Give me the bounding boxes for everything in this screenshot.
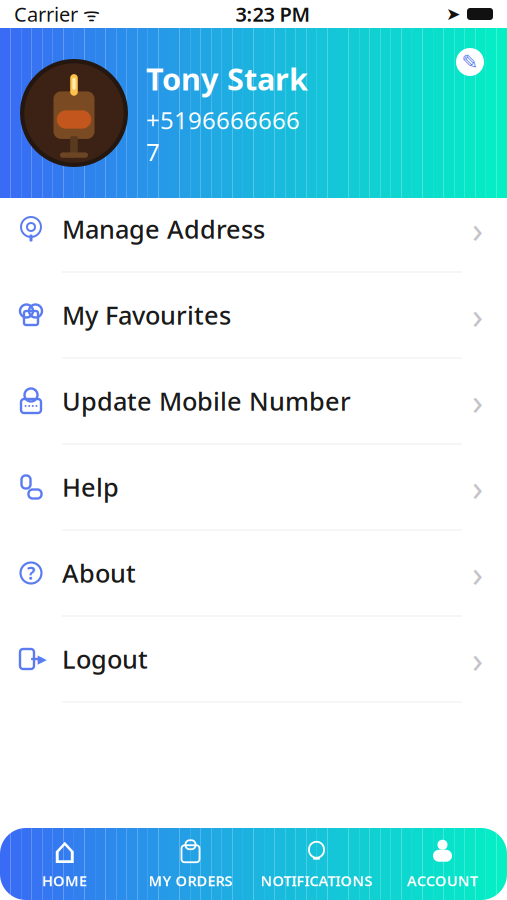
staticText: HOME (42, 871, 87, 890)
staticText: Carrier (14, 1, 78, 27)
staticText: ▶ (37, 652, 46, 666)
staticText: 3:23 PM (235, 1, 310, 27)
staticText: About (62, 556, 136, 590)
staticText: ᯤ (78, 2, 100, 26)
button[interactable]: Manage Address (0, 198, 507, 284)
staticText: NOTIFICATIONS (260, 871, 372, 890)
staticText: › (472, 377, 483, 425)
staticText: MY ORDERS (148, 871, 232, 890)
button[interactable]: ? (0, 542, 507, 628)
staticText: Manage Address (62, 212, 265, 246)
staticText: Update Mobile Number (62, 384, 351, 418)
staticText: Logout (62, 642, 148, 676)
staticText: ACCOUNT (407, 871, 478, 890)
staticText: ? (27, 561, 35, 584)
staticText: ✎ (461, 51, 478, 73)
staticText: ⌂ (53, 830, 76, 871)
staticText: Tony Stark (146, 58, 308, 99)
button[interactable]: My Favourites (0, 284, 507, 370)
staticText: Help (62, 470, 119, 504)
button[interactable]: Help (0, 456, 507, 542)
button[interactable]: NOTIFICATIONS (253, 828, 379, 900)
staticText: +51966666667 (146, 104, 300, 168)
staticText: › (472, 205, 483, 253)
button[interactable]: ⌂ (1, 828, 127, 900)
staticText: › (472, 291, 483, 339)
staticText: › (472, 463, 483, 511)
staticText: ➤ (446, 4, 461, 24)
staticText: › (472, 635, 483, 683)
staticText: My Favourites (62, 298, 231, 332)
button[interactable]: Edit profile (456, 48, 484, 76)
button[interactable]: ACCOUNT (379, 828, 505, 900)
staticText: › (472, 549, 483, 597)
button[interactable]: MY ORDERS (127, 828, 253, 900)
button[interactable]: ▶ (0, 628, 507, 714)
button[interactable]: Update Mobile Number (0, 370, 507, 456)
